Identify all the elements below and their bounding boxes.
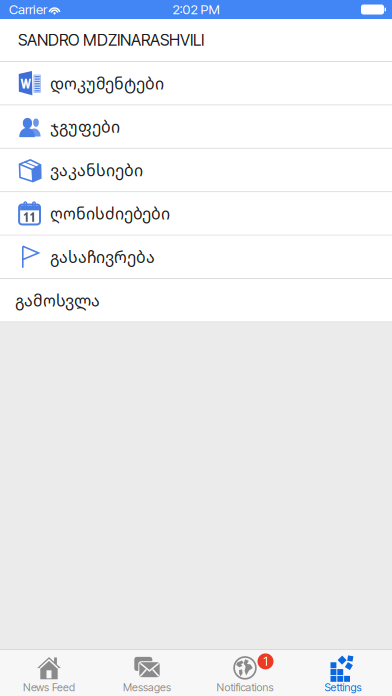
- staticText: Carrier: [9, 1, 47, 17]
- staticText: Messages: [123, 681, 171, 694]
- staticText: ღონისძიებები: [50, 203, 170, 224]
- staticText: Settings: [324, 681, 361, 694]
- button[interactable]: ჯგუფები: [0, 105, 392, 149]
- staticText: დოკუმენტები: [50, 72, 164, 94]
- staticText: ჯგუფები: [50, 116, 120, 137]
- staticText: გასაჩივრება: [50, 246, 155, 268]
- staticText: 2:02 PM: [172, 1, 219, 17]
- staticText: SANDRO MDZINARASHVILI: [18, 30, 204, 50]
- staticText: News Feed: [23, 681, 75, 694]
- button[interactable]: ღონისძიებები: [0, 192, 392, 236]
- button[interactable]: ვაკანსიები: [0, 149, 392, 192]
- staticText: გამოსვლა: [15, 289, 100, 311]
- button[interactable]: 1: [196, 650, 294, 696]
- button[interactable]: Settings: [294, 650, 392, 696]
- button[interactable]: გასაჩივრება: [0, 236, 392, 279]
- staticText: 1: [263, 654, 267, 669]
- button[interactable]: გამოსვლა: [0, 279, 392, 322]
- button[interactable]: News Feed: [0, 650, 98, 696]
- staticText: Notifications: [216, 681, 273, 694]
- staticText: ვაკანსიები: [50, 159, 143, 181]
- button[interactable]: დოკუმენტები: [0, 62, 392, 105]
- button[interactable]: Messages: [98, 650, 196, 696]
